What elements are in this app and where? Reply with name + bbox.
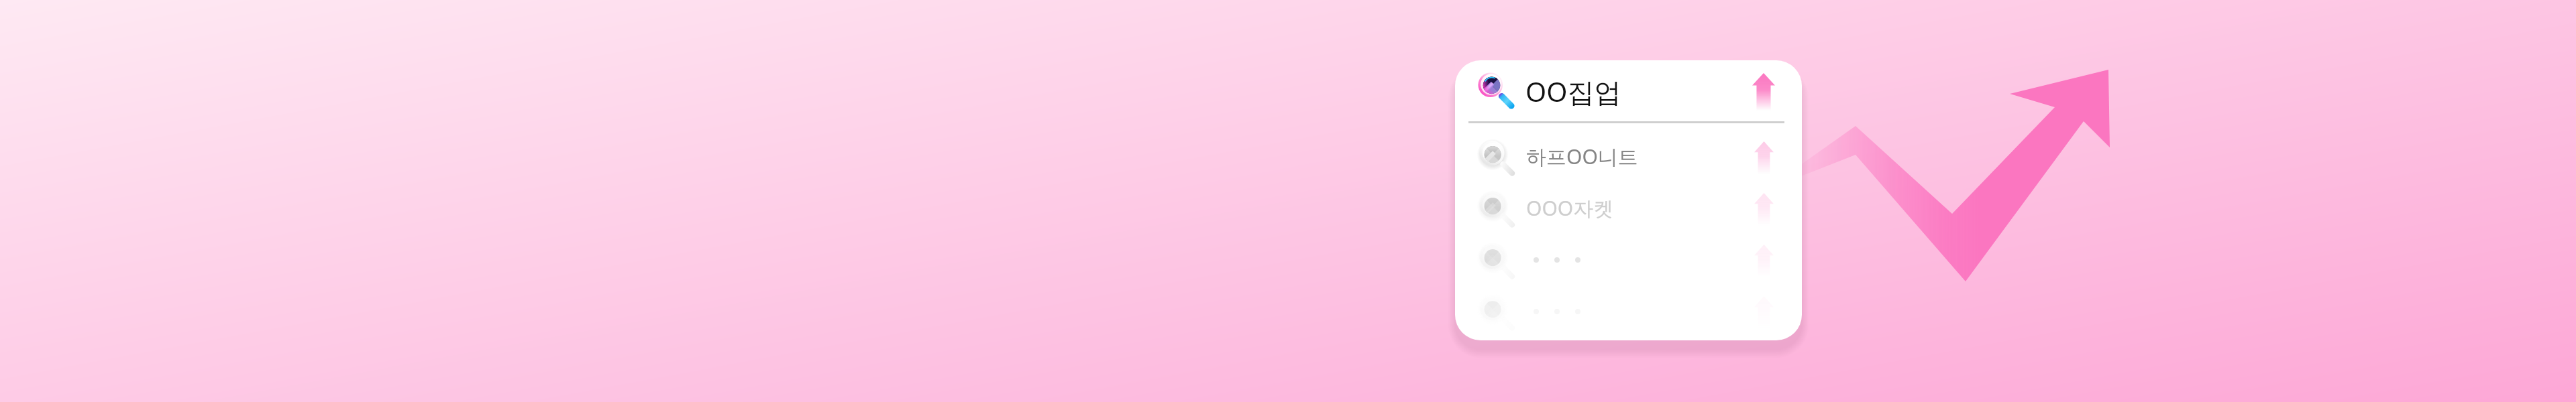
button[interactable] [1455, 234, 1802, 285]
button[interactable]: 하프OO니트 [1455, 131, 1802, 182]
staticText: OOO자켓 [1526, 194, 1614, 222]
button[interactable] [1455, 285, 1802, 337]
button[interactable]: OOO자켓 [1455, 182, 1802, 234]
staticText: OO집업 [1525, 73, 1621, 110]
staticText: 하프OO니트 [1526, 143, 1638, 170]
button[interactable]: OO집업 [1455, 60, 1802, 122]
